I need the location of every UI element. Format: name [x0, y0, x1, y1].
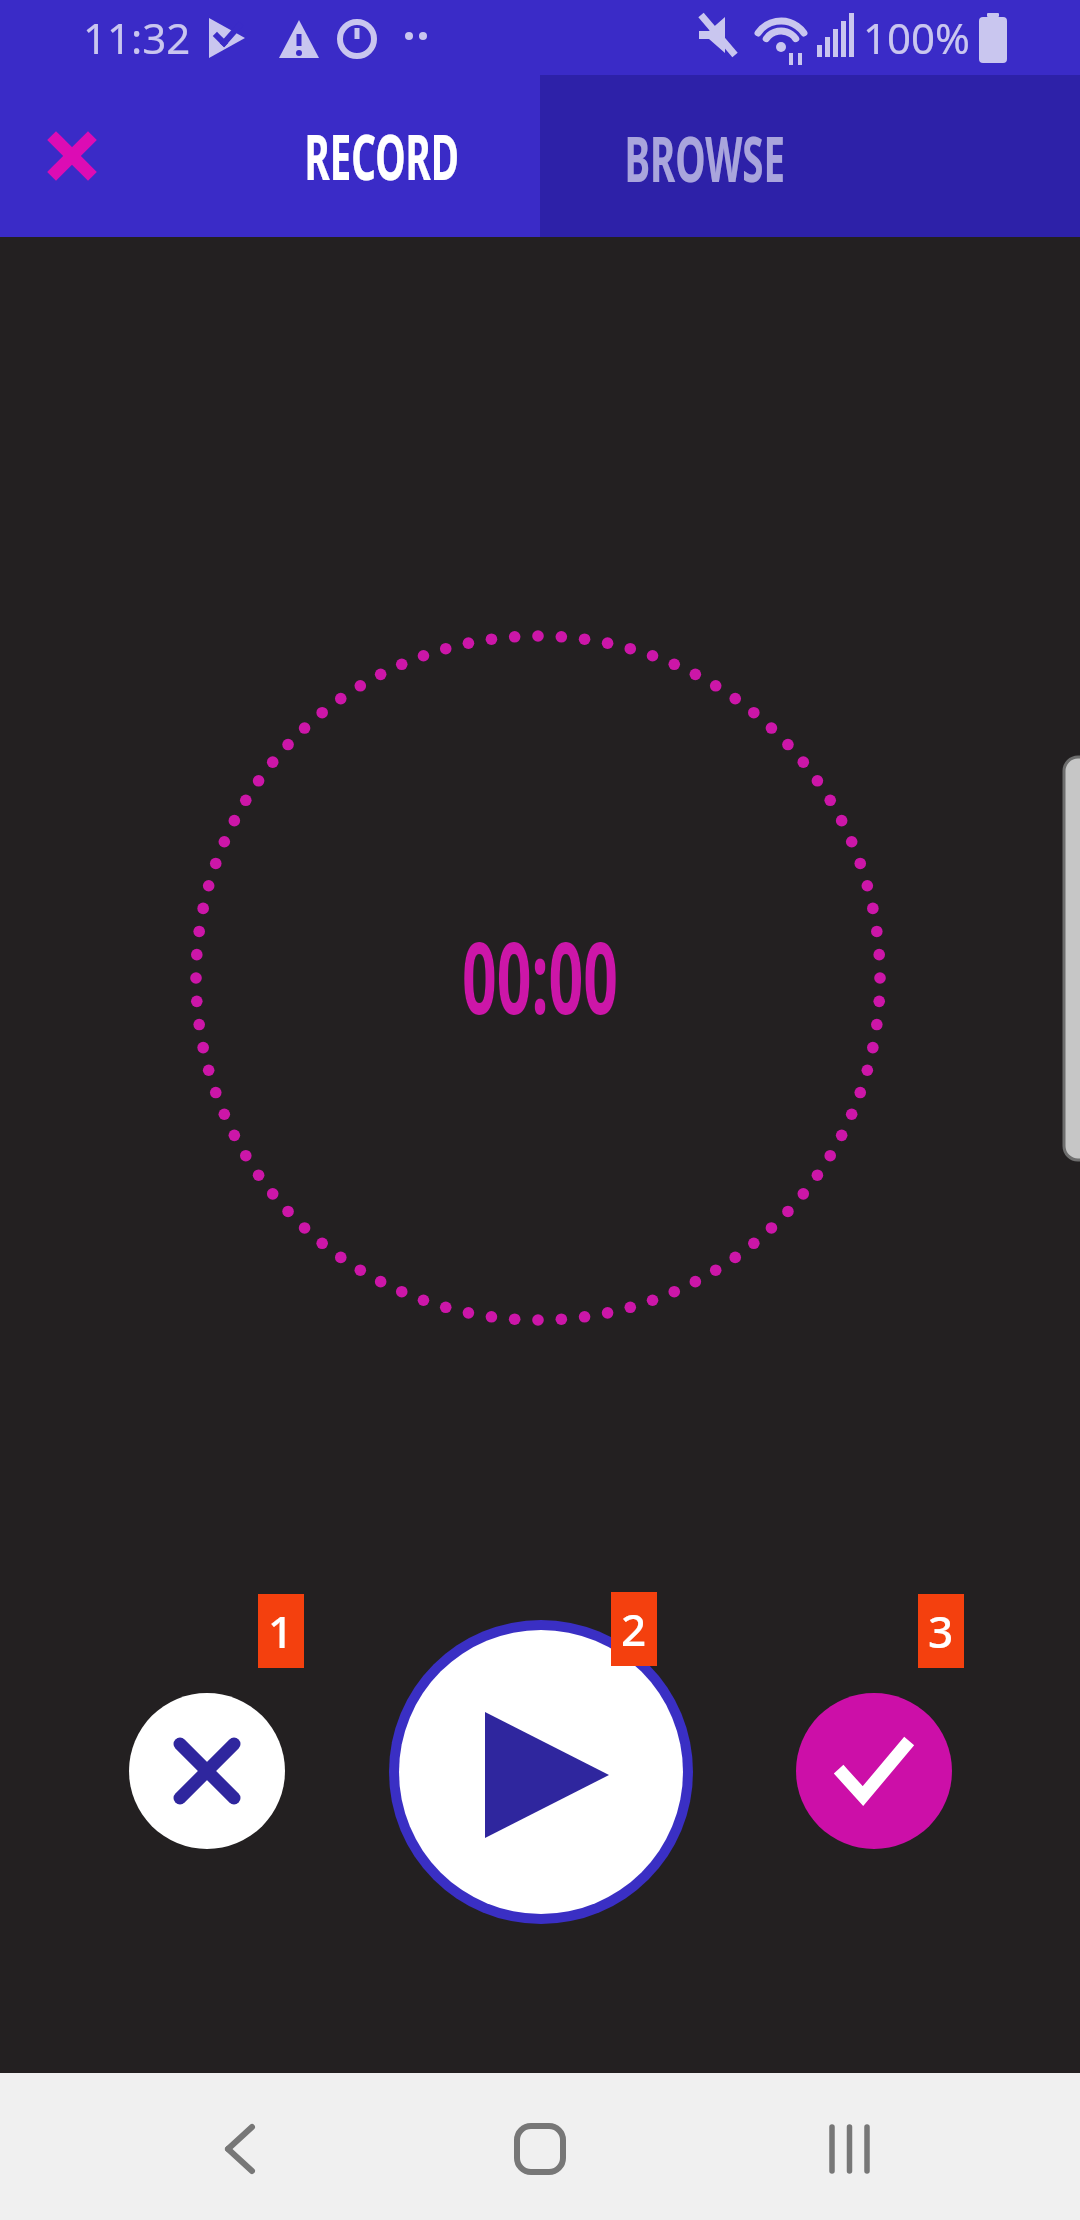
button[interactable]	[170, 2079, 310, 2219]
staticText: 11:32	[83, 9, 191, 66]
button[interactable]	[470, 2079, 610, 2219]
staticText: 3	[928, 1601, 954, 1661]
button[interactable]	[796, 1693, 952, 1849]
staticText: 1	[268, 1601, 294, 1661]
button[interactable]	[129, 1693, 285, 1849]
button[interactable]	[779, 2079, 919, 2219]
button[interactable]: RECORD	[200, 75, 564, 237]
staticText: 00:00	[462, 909, 618, 1042]
staticText: RECORD	[304, 114, 459, 198]
staticText: 100%	[863, 9, 970, 66]
button[interactable]: BROWSE	[540, 75, 1080, 237]
button[interactable]	[389, 1620, 693, 1924]
button[interactable]	[24, 108, 120, 204]
staticText: 2	[621, 1599, 647, 1659]
staticText: BROWSE	[624, 116, 786, 200]
